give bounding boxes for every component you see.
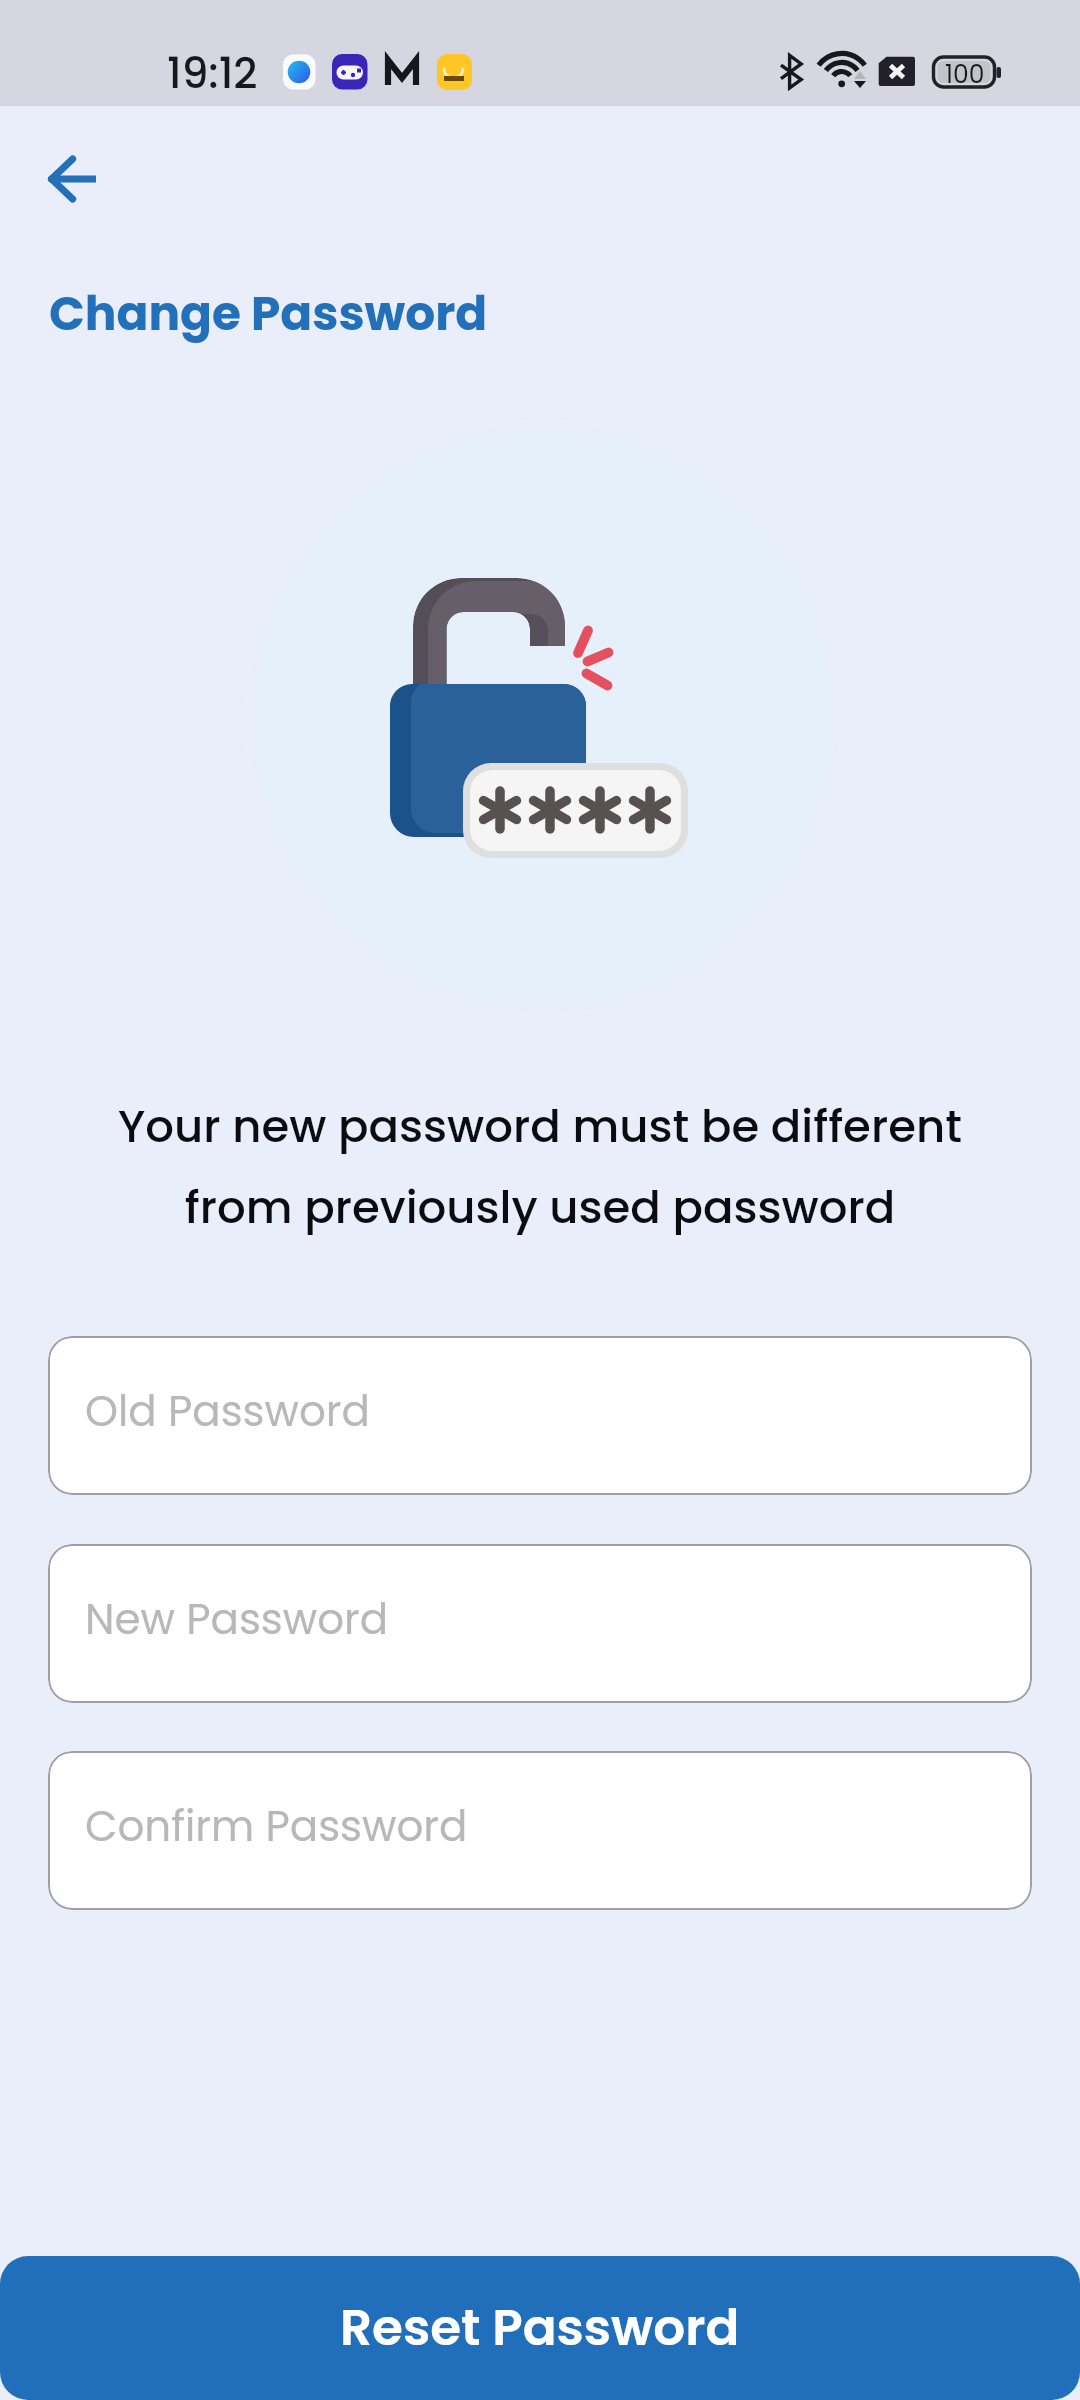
button[interactable]: New Password [48, 1544, 1032, 1703]
staticText: New Password [85, 1590, 389, 1649]
staticText: Change Password [49, 281, 488, 347]
button[interactable]: Back [46, 153, 98, 205]
staticText: 100 [945, 57, 985, 92]
button[interactable]: Old Password [48, 1336, 1032, 1495]
button[interactable]: Reset Password [0, 2256, 1080, 2400]
staticText: Reset Password [340, 2293, 740, 2363]
staticText: 19:12 [167, 44, 258, 103]
staticText: Your new password must be different from… [0, 1095, 1080, 1239]
staticText: Old Password [85, 1382, 370, 1441]
button[interactable]: Confirm Password [48, 1751, 1032, 1910]
staticText: Confirm Password [85, 1797, 468, 1856]
